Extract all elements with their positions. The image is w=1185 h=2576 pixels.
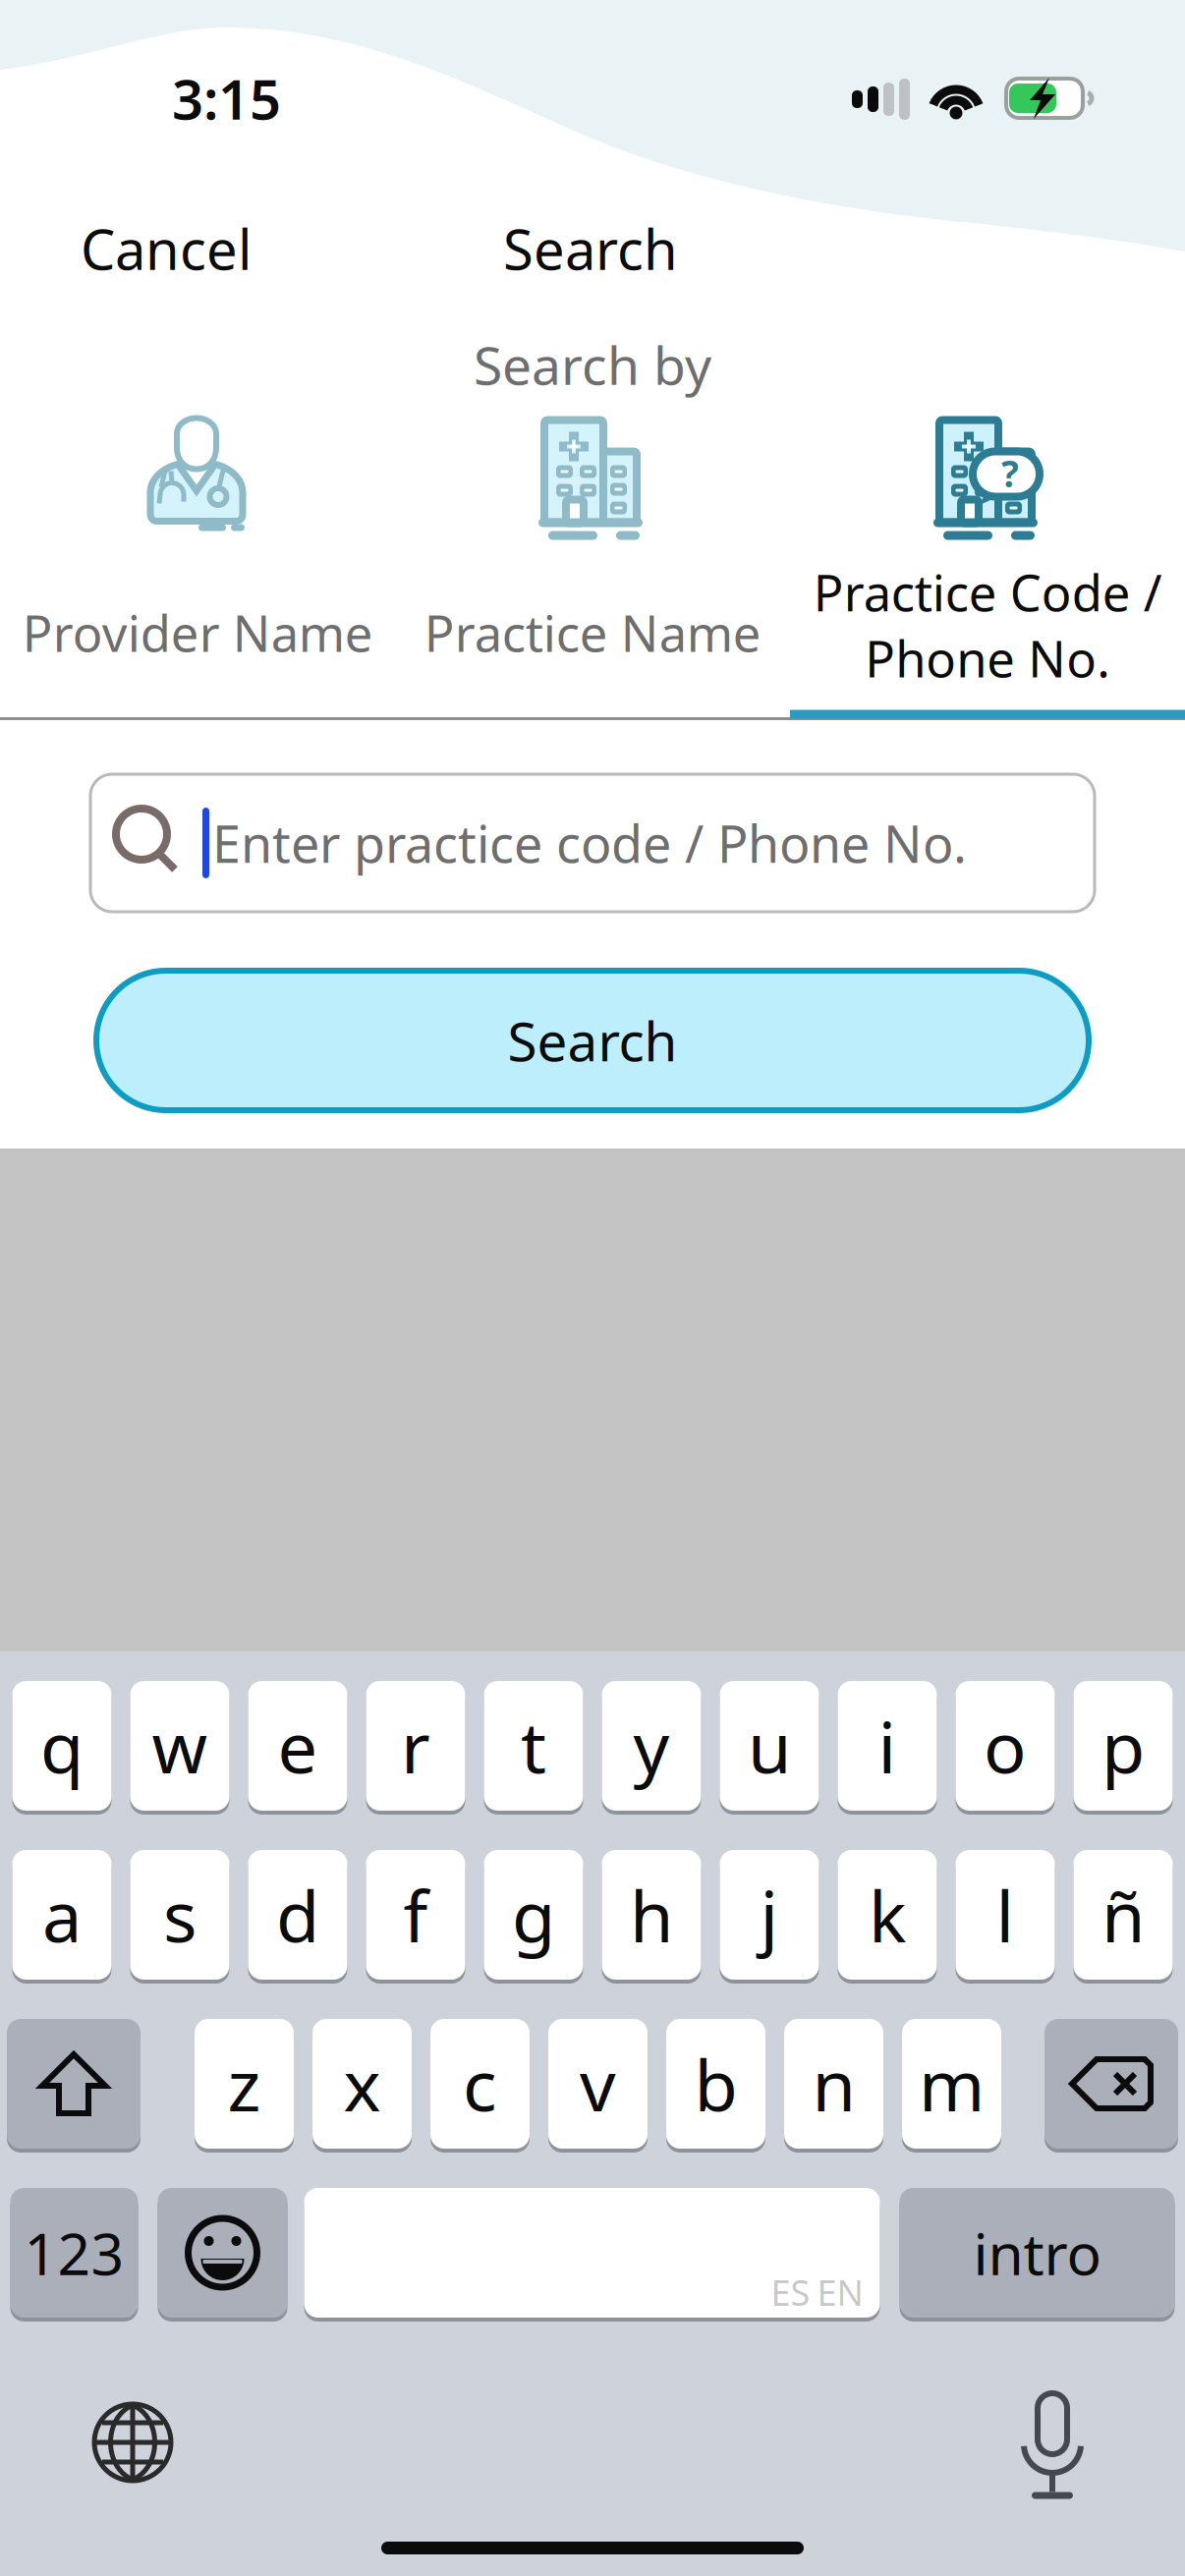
button[interactable]: ?: [790, 394, 1185, 719]
staticText: c: [463, 2037, 497, 2131]
staticText: Search: [508, 1005, 677, 1076]
staticText: s: [163, 1868, 197, 1962]
staticText: Cancel: [81, 212, 252, 285]
button[interactable]: r: [366, 1678, 465, 1814]
button[interactable]: y: [602, 1678, 701, 1814]
button[interactable]: c: [430, 2016, 530, 2152]
button[interactable]: m: [902, 2016, 1001, 2152]
staticText: f: [403, 1868, 428, 1962]
staticText: w: [152, 1699, 208, 1793]
staticText: ñ: [1101, 1868, 1145, 1962]
staticText: u: [748, 1699, 791, 1793]
button[interactable]: d: [248, 1847, 347, 1983]
button[interactable]: e: [248, 1678, 347, 1814]
staticText: n: [812, 2037, 855, 2131]
button[interactable]: h: [602, 1847, 701, 1983]
staticText: intro: [973, 2214, 1101, 2291]
staticText: g: [512, 1868, 555, 1962]
button[interactable]: Cancel: [23, 195, 310, 303]
button[interactable]: v: [548, 2016, 648, 2152]
button[interactable]: z: [195, 2016, 294, 2152]
staticText: 123: [24, 2214, 124, 2291]
staticText: o: [984, 1699, 1027, 1793]
staticText: a: [42, 1868, 82, 1962]
button[interactable]: n: [784, 2016, 883, 2152]
button[interactable]: x: [312, 2016, 412, 2152]
button[interactable]: Practice Name: [395, 394, 790, 719]
staticText: e: [278, 1699, 318, 1793]
staticText: k: [869, 1868, 906, 1962]
button[interactable]: b: [666, 2016, 765, 2152]
button[interactable]: Change keyboard: [74, 2383, 192, 2501]
staticText: 3:15: [172, 62, 281, 135]
staticText: q: [40, 1699, 84, 1793]
button[interactable]: ñ: [1073, 1847, 1173, 1983]
button[interactable]: Emoji: [158, 2185, 287, 2321]
button[interactable]: l: [956, 1847, 1055, 1983]
staticText: h: [630, 1868, 673, 1962]
staticText: z: [227, 2037, 261, 2131]
button[interactable]: q: [12, 1678, 112, 1814]
button[interactable]: o: [956, 1678, 1055, 1814]
staticText: Enter practice code / Phone No.: [212, 809, 967, 877]
staticText: ?: [1001, 449, 1019, 497]
staticText: y: [633, 1699, 670, 1793]
staticText: p: [1101, 1699, 1145, 1793]
button[interactable]: Space: [304, 2185, 880, 2321]
button[interactable]: s: [130, 1847, 229, 1983]
staticText: EN: [817, 2269, 863, 2316]
staticText: j: [760, 1868, 779, 1962]
button[interactable]: k: [838, 1847, 937, 1983]
staticText: Search by: [474, 330, 711, 399]
button[interactable]: t: [484, 1678, 583, 1814]
button[interactable]: i: [838, 1678, 937, 1814]
staticText: x: [343, 2037, 381, 2131]
staticText: Provider Name: [22, 599, 373, 666]
staticText: Search: [503, 212, 678, 285]
staticText: r: [401, 1699, 430, 1793]
button[interactable]: p: [1073, 1678, 1173, 1814]
button[interactable]: j: [720, 1847, 819, 1983]
staticText: i: [878, 1699, 897, 1793]
staticText: d: [276, 1868, 319, 1962]
staticText: t: [521, 1699, 546, 1793]
button[interactable]: g: [484, 1847, 583, 1983]
button[interactable]: Shift: [7, 2016, 141, 2152]
staticText: Practice Code / Phone No.: [813, 559, 1162, 691]
staticText: m: [919, 2037, 985, 2131]
button[interactable]: Dictate: [993, 2383, 1111, 2501]
button[interactable]: a: [12, 1847, 112, 1983]
staticText: Practice Name: [424, 599, 761, 666]
staticText: l: [996, 1868, 1015, 1962]
staticText: b: [694, 2037, 737, 2131]
staticText: v: [580, 2037, 616, 2131]
button[interactable]: Provider Name: [0, 394, 395, 719]
button[interactable]: Search: [468, 195, 713, 303]
button[interactable]: Search: [0, 971, 1185, 1110]
staticText: ES: [771, 2269, 810, 2316]
button[interactable]: u: [720, 1678, 819, 1814]
button[interactable]: w: [130, 1678, 229, 1814]
button[interactable]: f: [366, 1847, 465, 1983]
button[interactable]: 123: [10, 2185, 138, 2321]
button[interactable]: Delete: [1044, 2016, 1178, 2152]
button[interactable]: intro: [900, 2185, 1175, 2321]
